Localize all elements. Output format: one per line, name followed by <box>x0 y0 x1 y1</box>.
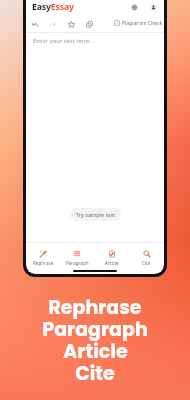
staticText: Rephrase <box>48 294 142 321</box>
button[interactable]: Cite <box>129 249 164 266</box>
staticText: Cite <box>75 360 115 387</box>
button[interactable]: Plagiarism Check <box>114 18 163 28</box>
button[interactable]: Paragraph <box>60 249 94 266</box>
staticText: EasyEssay <box>32 1 74 13</box>
staticText: Enter your text here. <box>33 37 91 45</box>
staticText: Article <box>63 338 128 365</box>
button[interactable]: Copy <box>83 18 95 30</box>
button[interactable]: Try sample text <box>70 208 121 221</box>
staticText: Plagiarism Check <box>122 20 163 27</box>
button[interactable]: Redo <box>46 18 58 30</box>
staticText: Paragraph <box>66 260 89 266</box>
button[interactable]: Profile <box>150 4 157 11</box>
staticText: Cite <box>142 260 151 266</box>
staticText: Rephrase <box>33 260 54 266</box>
button[interactable]: Undo <box>29 18 41 30</box>
staticText: Article <box>105 260 119 266</box>
staticText: Paragraph <box>42 316 148 343</box>
button[interactable]: Language <box>131 4 138 11</box>
staticText: Try sample text <box>76 211 116 218</box>
button[interactable]: Favourite <box>65 18 77 30</box>
button[interactable]: Rephrase <box>26 249 60 266</box>
button[interactable]: Article <box>94 249 129 266</box>
